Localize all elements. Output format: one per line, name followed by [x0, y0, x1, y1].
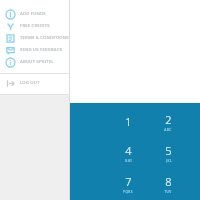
- button[interactable]: 2: [148, 106, 188, 137]
- button[interactable]: LOG OUT: [0, 77, 69, 89]
- staticText: TUV: [164, 190, 172, 194]
- button[interactable]: ADD FUNDS: [0, 8, 69, 20]
- button[interactable]: 1: [108, 106, 148, 137]
- staticText: 4: [125, 143, 132, 158]
- button[interactable]: TERMS & CONDITIONS: [0, 32, 69, 44]
- button[interactable]: SEND US FEEDBACK: [0, 44, 69, 56]
- button[interactable]: FREE CREDITS: [0, 20, 69, 32]
- staticText: GHI: [125, 159, 132, 163]
- staticText: 2: [165, 112, 172, 127]
- staticText: TERMS & CONDITIONS: [20, 35, 69, 41]
- staticText: FREE CREDITS: [20, 23, 50, 29]
- button[interactable]: 7: [108, 168, 148, 199]
- button[interactable]: 5: [148, 137, 188, 168]
- staticText: ABOUT SPRITEL: [20, 59, 54, 65]
- staticText: JKL: [166, 159, 172, 163]
- staticText: 1: [125, 114, 132, 129]
- staticText: ADD FUNDS: [20, 11, 46, 17]
- staticText: 5: [165, 143, 172, 158]
- button[interactable]: ABOUT SPRITEL: [0, 56, 69, 68]
- button[interactable]: 8: [148, 168, 188, 199]
- staticText: SEND US FEEDBACK: [20, 47, 63, 53]
- staticText: 7: [125, 174, 132, 189]
- staticText: ABC: [164, 128, 172, 132]
- staticText: 8: [165, 174, 172, 189]
- staticText: PQRS: [123, 190, 133, 194]
- staticText: LOG OUT: [20, 80, 40, 86]
- button[interactable]: 4: [108, 137, 148, 168]
